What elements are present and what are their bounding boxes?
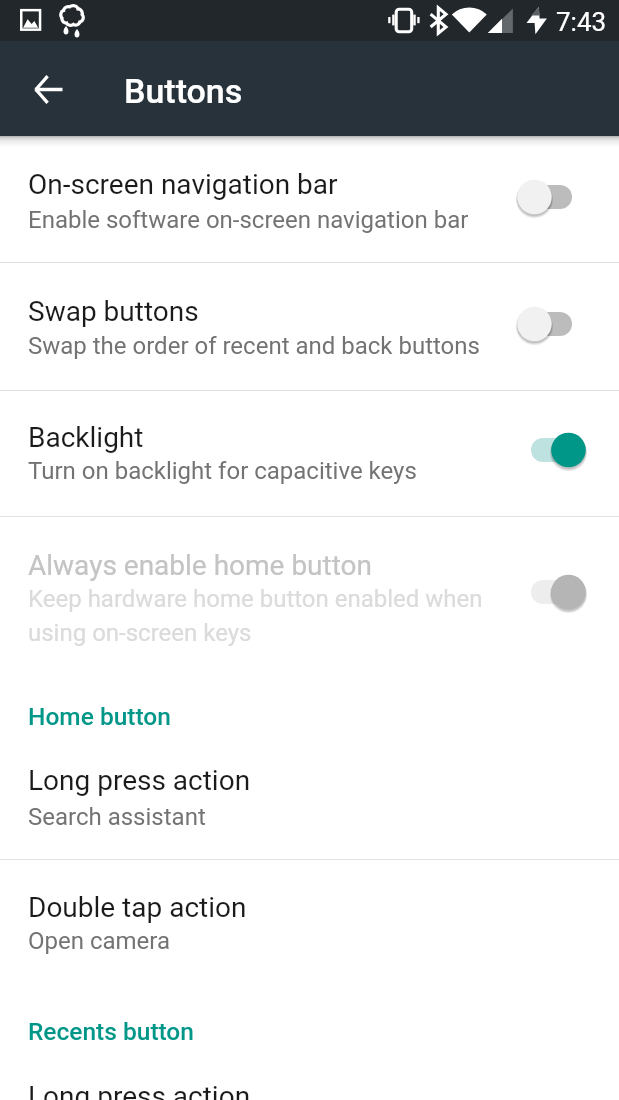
staticText: Long press action [28,1080,251,1100]
button[interactable]: Long press action [0,1046,619,1100]
staticText: Double tap action [28,891,247,924]
button[interactable]: Double tap action [0,860,619,955]
button[interactable]: On-screen navigation bar [0,136,619,262]
button[interactable]: Navigate up [20,61,76,117]
staticText: Always enable home button [28,549,373,582]
button[interactable]: Long press action [0,731,619,859]
button[interactable]: Off switch [510,298,582,350]
staticText: Home button [28,702,171,731]
button[interactable]: On switch [510,424,582,476]
staticText: On-screen navigation bar [28,168,338,201]
staticText: Backlight [28,421,144,454]
staticText: Buttons [124,71,243,111]
staticText: Keep hardware home button enabled when u… [28,585,483,647]
button[interactable]: Always enable home button [0,517,619,647]
staticText: Swap buttons [28,295,199,328]
staticText: Enable software on-screen navigation bar [28,206,469,234]
staticText: Open camera [28,927,171,955]
button[interactable]: Off switch [510,171,582,223]
button[interactable]: Swap buttons [0,263,619,390]
staticText: Swap the order of recent and back button… [28,332,480,360]
button[interactable]: On switch [510,566,582,618]
staticText: Long press action [28,764,251,797]
staticText: Search assistant [28,803,206,831]
staticText: Recents button [28,1017,194,1046]
staticText: 7:43 [556,7,607,37]
staticText: Turn on backlight for capacitive keys [28,457,417,485]
button[interactable]: Backlight [0,391,619,516]
